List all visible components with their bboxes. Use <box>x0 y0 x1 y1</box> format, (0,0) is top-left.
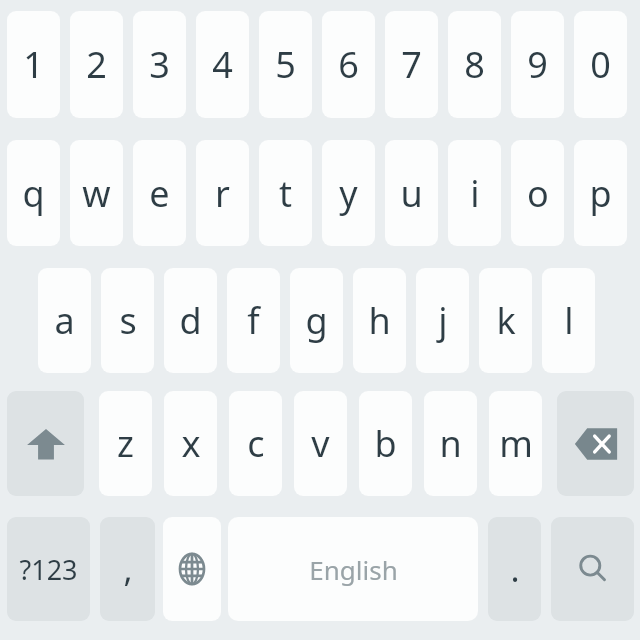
button[interactable]: z <box>99 391 152 496</box>
button[interactable]: Backspace <box>557 391 634 496</box>
staticText: 8 <box>464 40 485 89</box>
button[interactable]: j <box>416 268 469 373</box>
button[interactable]: 4 <box>196 11 249 118</box>
staticText: m <box>499 419 533 468</box>
button[interactable]: u <box>385 140 438 246</box>
staticText: 4 <box>212 40 233 89</box>
staticText: t <box>279 169 292 218</box>
button[interactable]: o <box>511 140 564 246</box>
staticText: y <box>339 169 358 218</box>
staticText: English <box>309 552 398 587</box>
staticText: 0 <box>590 40 611 89</box>
staticText: 9 <box>527 40 548 89</box>
staticText: g <box>305 296 328 345</box>
button[interactable]: , <box>100 517 155 621</box>
staticText: p <box>589 169 612 218</box>
button[interactable]: 0 <box>574 11 627 118</box>
button[interactable]: English <box>228 517 478 621</box>
button[interactable]: y <box>322 140 375 246</box>
staticText: c <box>247 419 265 468</box>
button[interactable]: c <box>229 391 282 496</box>
button[interactable]: g <box>290 268 343 373</box>
button[interactable]: Shift <box>7 391 84 496</box>
staticText: 2 <box>86 40 107 89</box>
staticText: j <box>438 296 448 345</box>
button[interactable]: k <box>479 268 532 373</box>
staticText: r <box>215 169 230 218</box>
button[interactable]: e <box>133 140 186 246</box>
button[interactable]: r <box>196 140 249 246</box>
staticText: a <box>54 296 75 345</box>
staticText: s <box>119 296 137 345</box>
button[interactable]: 2 <box>70 11 123 118</box>
button[interactable]: l <box>542 268 595 373</box>
button[interactable]: q <box>7 140 60 246</box>
staticText: q <box>22 169 45 218</box>
button[interactable]: . <box>488 517 541 621</box>
button[interactable]: b <box>359 391 412 496</box>
staticText: o <box>527 169 549 218</box>
staticText: i <box>470 169 480 218</box>
button[interactable]: m <box>489 391 542 496</box>
button[interactable]: 3 <box>133 11 186 118</box>
button[interactable]: ?123 <box>7 517 90 621</box>
staticText: l <box>564 296 574 345</box>
button[interactable]: n <box>424 391 477 496</box>
button[interactable]: 9 <box>511 11 564 118</box>
button[interactable]: f <box>227 268 280 373</box>
button[interactable]: 1 <box>7 11 60 118</box>
button[interactable]: i <box>448 140 501 246</box>
button[interactable]: s <box>101 268 154 373</box>
staticText: f <box>247 296 260 345</box>
staticText: x <box>181 419 201 468</box>
staticText: , <box>123 546 133 592</box>
staticText: 3 <box>149 40 170 89</box>
button[interactable]: 8 <box>448 11 501 118</box>
staticText: d <box>179 296 202 345</box>
staticText: z <box>117 419 134 468</box>
staticText: 5 <box>275 40 296 89</box>
staticText: . <box>510 546 520 592</box>
staticText: v <box>311 419 330 468</box>
button[interactable]: d <box>164 268 217 373</box>
button[interactable]: Search <box>551 517 634 621</box>
button[interactable]: x <box>164 391 217 496</box>
staticText: 7 <box>401 40 422 89</box>
staticText: n <box>439 419 462 468</box>
staticText: e <box>149 169 170 218</box>
staticText: w <box>82 169 111 218</box>
button[interactable]: 7 <box>385 11 438 118</box>
button[interactable]: v <box>294 391 347 496</box>
button[interactable]: 5 <box>259 11 312 118</box>
staticText: 6 <box>338 40 359 89</box>
staticText: b <box>374 419 397 468</box>
button[interactable]: a <box>38 268 91 373</box>
button[interactable]: w <box>70 140 123 246</box>
staticText: h <box>368 296 391 345</box>
button[interactable]: p <box>574 140 627 246</box>
button[interactable]: h <box>353 268 406 373</box>
button[interactable]: Change language <box>163 517 221 621</box>
staticText: u <box>400 169 423 218</box>
staticText: ?123 <box>19 551 78 588</box>
button[interactable]: t <box>259 140 312 246</box>
staticText: k <box>496 296 516 345</box>
button[interactable]: 6 <box>322 11 375 118</box>
staticText: 1 <box>23 40 44 89</box>
